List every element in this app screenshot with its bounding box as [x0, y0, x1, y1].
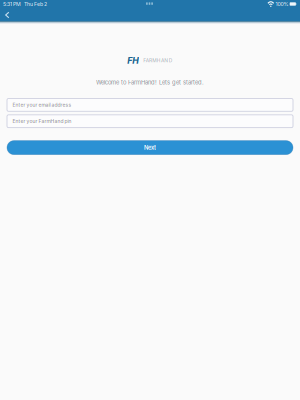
staticText: 100% [275, 1, 288, 7]
staticText: Welcome to FarmHand! Lets get started. [96, 79, 204, 86]
staticText: FARMHAND [143, 57, 173, 63]
staticText: FH [127, 55, 139, 66]
button[interactable]: Next [7, 141, 293, 155]
staticText: 5:31 PM Thu Feb 2 [3, 1, 47, 7]
staticText: Enter your FarmHand pin [13, 118, 72, 124]
staticText: Enter your email address [13, 102, 72, 108]
staticText: Next [144, 144, 156, 151]
button[interactable]: Back [1, 8, 13, 21]
